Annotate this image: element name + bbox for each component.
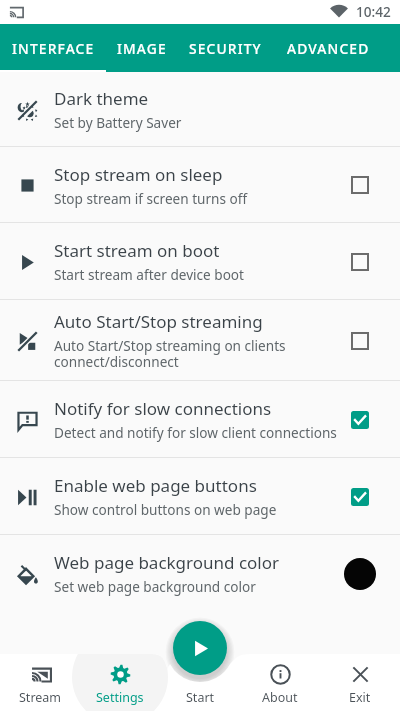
button[interactable]: Start stream [173, 621, 227, 675]
staticText: Set web page background color [54, 577, 256, 596]
staticText: Detect and notify for slow client connec… [54, 423, 337, 442]
button[interactable]: Start stream on boot [0, 223, 400, 300]
button[interactable]: IMAGE [106, 24, 178, 72]
staticText: SECURITY [189, 39, 262, 58]
button[interactable]: Auto Start/Stop streaming [0, 300, 400, 381]
button[interactable]: Start [160, 654, 240, 711]
button[interactable]: Stop stream on sleep [0, 147, 400, 223]
staticText: Stop stream on sleep [54, 163, 223, 186]
staticText: Web page background color [54, 551, 280, 574]
button[interactable]: Exit [320, 654, 400, 711]
button[interactable]: Enable web page buttons [0, 458, 400, 535]
staticText: Settings [96, 689, 144, 706]
staticText: Start [186, 689, 215, 706]
staticText: INTERFACE [12, 39, 95, 58]
staticText: Stream [19, 689, 62, 706]
staticText: Auto Start/Stop streaming [54, 310, 263, 333]
staticText: Enable web page buttons [54, 474, 257, 497]
staticText: Show control buttons on web page [54, 500, 277, 519]
button[interactable]: Stream [0, 654, 80, 711]
button[interactable]: SECURITY [178, 24, 273, 72]
staticText: Set by Battery Saver [54, 113, 182, 132]
button[interactable]: Settings [80, 654, 160, 711]
staticText: Start stream on boot [54, 239, 220, 262]
button[interactable]: Web page background color [0, 535, 400, 612]
staticText: Notify for slow connections [54, 397, 272, 420]
staticText: ADVANCED [287, 39, 370, 58]
button[interactable]: INTERFACE [0, 24, 106, 72]
button[interactable]: ADVANCED [273, 24, 383, 72]
staticText: Dark theme [54, 87, 149, 110]
staticText: Start stream after device boot [54, 265, 244, 284]
staticText: Auto Start/Stop streaming on clients con… [54, 336, 286, 371]
staticText: 10:42 [356, 2, 391, 21]
other: Cast [9, 5, 24, 20]
button[interactable]: Dark theme [0, 72, 400, 147]
button[interactable]: About [240, 654, 320, 711]
staticText: IMAGE [117, 39, 167, 58]
staticText: Exit [349, 689, 371, 706]
button[interactable]: Notify for slow connections [0, 381, 400, 458]
staticText: About [262, 689, 298, 706]
staticText: Stop stream if screen turns off [54, 189, 248, 208]
